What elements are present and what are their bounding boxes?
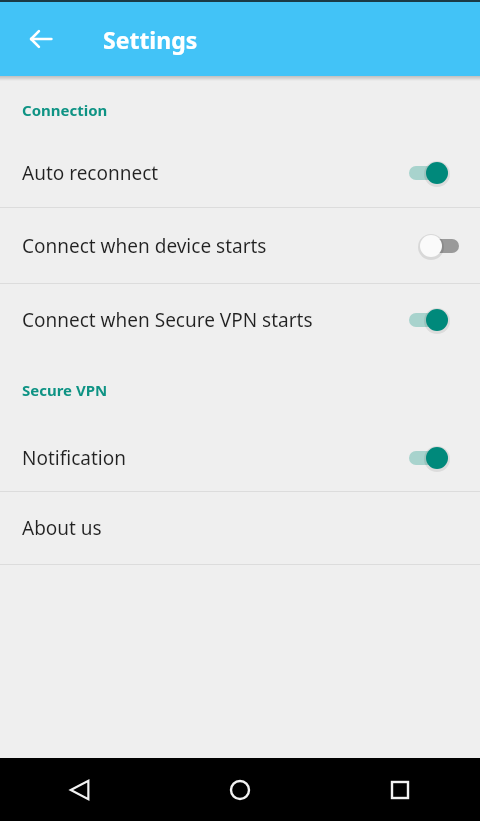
staticText: Auto reconnect bbox=[22, 160, 408, 186]
button[interactable]: Recent apps bbox=[320, 758, 480, 821]
button[interactable]: Toggle on bbox=[408, 441, 460, 475]
staticText: Connect when Secure VPN starts bbox=[22, 307, 408, 333]
button[interactable]: Auto reconnect bbox=[0, 139, 480, 207]
button[interactable]: Toggle off bbox=[408, 229, 460, 263]
button[interactable]: Connect when Secure VPN starts bbox=[0, 284, 480, 356]
button[interactable]: Connect when device starts bbox=[0, 208, 480, 283]
staticText: Notification bbox=[22, 445, 408, 471]
button[interactable]: Toggle on bbox=[408, 303, 460, 337]
button[interactable]: About us bbox=[0, 492, 480, 564]
staticText: About us bbox=[22, 515, 460, 541]
staticText: Connect when device starts bbox=[22, 233, 408, 259]
staticText: Secure VPN bbox=[22, 380, 108, 400]
button[interactable]: Toggle on bbox=[408, 156, 460, 190]
button[interactable]: Notification bbox=[0, 424, 480, 491]
button[interactable]: Back bbox=[0, 758, 160, 821]
staticText: Settings bbox=[103, 24, 198, 55]
button[interactable]: Home bbox=[160, 758, 320, 821]
button[interactable]: Back bbox=[17, 15, 65, 63]
staticText: Connection bbox=[22, 100, 108, 120]
